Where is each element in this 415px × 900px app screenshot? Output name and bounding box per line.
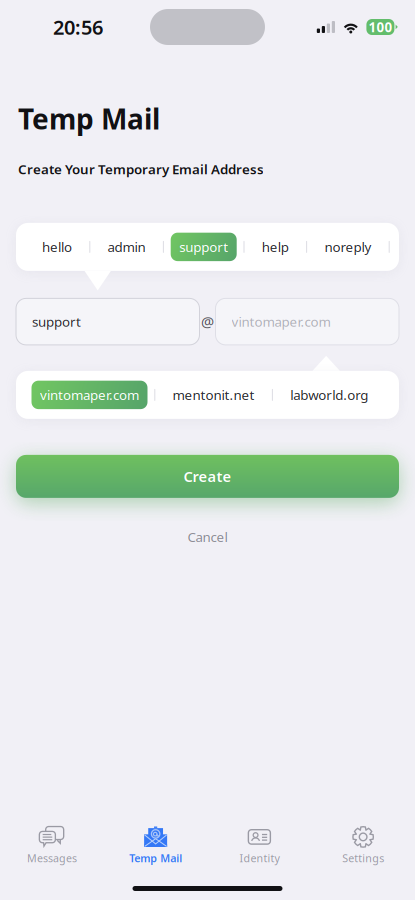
button[interactable]: hello xyxy=(31,233,82,261)
button[interactable]: labworld.org xyxy=(280,381,379,409)
button[interactable]: support xyxy=(171,233,237,261)
staticText: 20:56 xyxy=(53,14,103,40)
staticText: Settings xyxy=(342,851,384,865)
staticText: vintomaper.com xyxy=(40,386,139,404)
staticText: admin xyxy=(108,238,146,256)
staticText: Create xyxy=(183,467,231,486)
staticText: Temp Mail xyxy=(18,100,160,137)
staticText: Create Your Temporary Email Address xyxy=(18,160,264,178)
staticText: hello xyxy=(42,238,72,256)
staticText: 100 xyxy=(368,18,392,36)
button[interactable]: Identity xyxy=(207,825,311,865)
staticText: support xyxy=(179,238,228,256)
staticText: labworld.org xyxy=(290,386,368,404)
button[interactable]: vintomaper.com xyxy=(31,381,147,409)
staticText: Temp Mail xyxy=(129,851,182,865)
button[interactable]: Settings xyxy=(311,825,415,865)
staticText: Identity xyxy=(239,851,279,865)
button[interactable]: Create xyxy=(16,455,399,498)
staticText: Cancel xyxy=(187,528,227,546)
button[interactable]: help xyxy=(251,233,299,261)
button[interactable]: Messages xyxy=(0,825,104,865)
button[interactable]: noreply xyxy=(314,233,382,261)
staticText: noreply xyxy=(324,238,371,256)
staticText: mentonit.net xyxy=(173,386,255,404)
button[interactable]: admin xyxy=(97,233,156,261)
button[interactable]: Cancel xyxy=(0,520,415,554)
staticText: help xyxy=(262,238,289,256)
staticText: Messages xyxy=(27,851,77,865)
button[interactable]: Temp Mail xyxy=(104,825,208,865)
button[interactable]: mentonit.net xyxy=(162,381,265,409)
staticText: vintomaper.com xyxy=(231,313,330,330)
staticText: @ xyxy=(201,312,214,331)
staticText: support xyxy=(32,313,81,330)
